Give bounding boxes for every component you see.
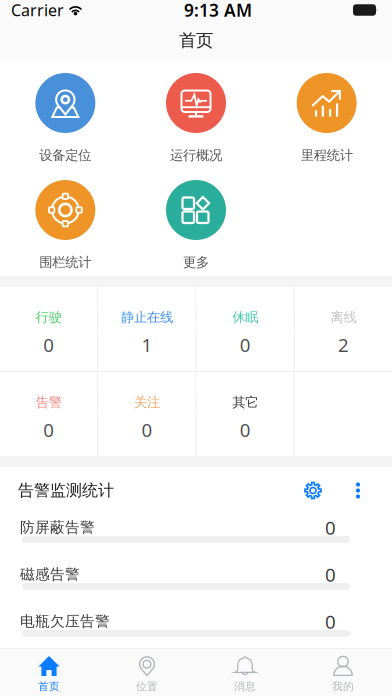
button[interactable]: 电瓶欠压告警 [0, 601, 392, 648]
button[interactable]: 防屏蔽告警 [0, 507, 392, 554]
staticText: 更多 [183, 254, 209, 270]
staticText: 首页 [179, 30, 213, 51]
staticText: 0 [141, 417, 152, 442]
staticText: 首页 [38, 680, 60, 693]
button[interactable]: 设置 [285, 473, 341, 507]
staticText: 告警监测统计 [18, 481, 114, 500]
button[interactable]: 位置 [98, 649, 196, 696]
button[interactable]: 首页 [0, 649, 98, 696]
staticText: 行驶 [36, 309, 62, 325]
staticText: 休眠 [232, 309, 258, 325]
button[interactable]: 更多 [341, 473, 375, 507]
staticText: 0 [43, 332, 54, 357]
button[interactable]: 更多 [131, 180, 261, 272]
staticText: 告警 [36, 394, 62, 410]
staticText: 磁感告警 [20, 565, 80, 583]
staticText: 0 [325, 515, 336, 540]
staticText: 消息 [234, 680, 256, 693]
staticText: 0 [325, 609, 336, 634]
staticText: 2 [338, 332, 349, 357]
staticText: 0 [325, 562, 336, 587]
staticText: 9:13 AM [184, 0, 252, 21]
staticText: 关注 [134, 394, 160, 410]
staticText: 其它 [232, 394, 258, 410]
staticText: 我的 [332, 680, 354, 693]
staticText: 0 [240, 417, 251, 442]
button[interactable]: 围栏统计 [0, 180, 131, 272]
staticText: 静止在线 [121, 309, 173, 325]
button[interactable]: 里程统计 [261, 73, 392, 165]
staticText: 0 [43, 417, 54, 442]
staticText: 围栏统计 [39, 254, 91, 270]
button[interactable]: 设备定位 [0, 73, 131, 165]
staticText: 位置 [136, 680, 158, 693]
staticText: 电瓶欠压告警 [20, 612, 110, 630]
staticText: Carrier [11, 0, 64, 21]
staticText: 运行概况 [170, 147, 222, 163]
button[interactable]: 运行概况 [131, 73, 261, 165]
staticText: 里程统计 [301, 147, 353, 163]
staticText: 离线 [330, 309, 356, 325]
staticText: 设备定位 [39, 147, 91, 163]
staticText: 1 [141, 332, 152, 357]
staticText: 防屏蔽告警 [20, 518, 95, 536]
staticText: 0 [240, 332, 251, 357]
button[interactable]: 消息 [196, 649, 294, 696]
button[interactable]: 磁感告警 [0, 554, 392, 601]
button[interactable]: 我的 [294, 649, 392, 696]
